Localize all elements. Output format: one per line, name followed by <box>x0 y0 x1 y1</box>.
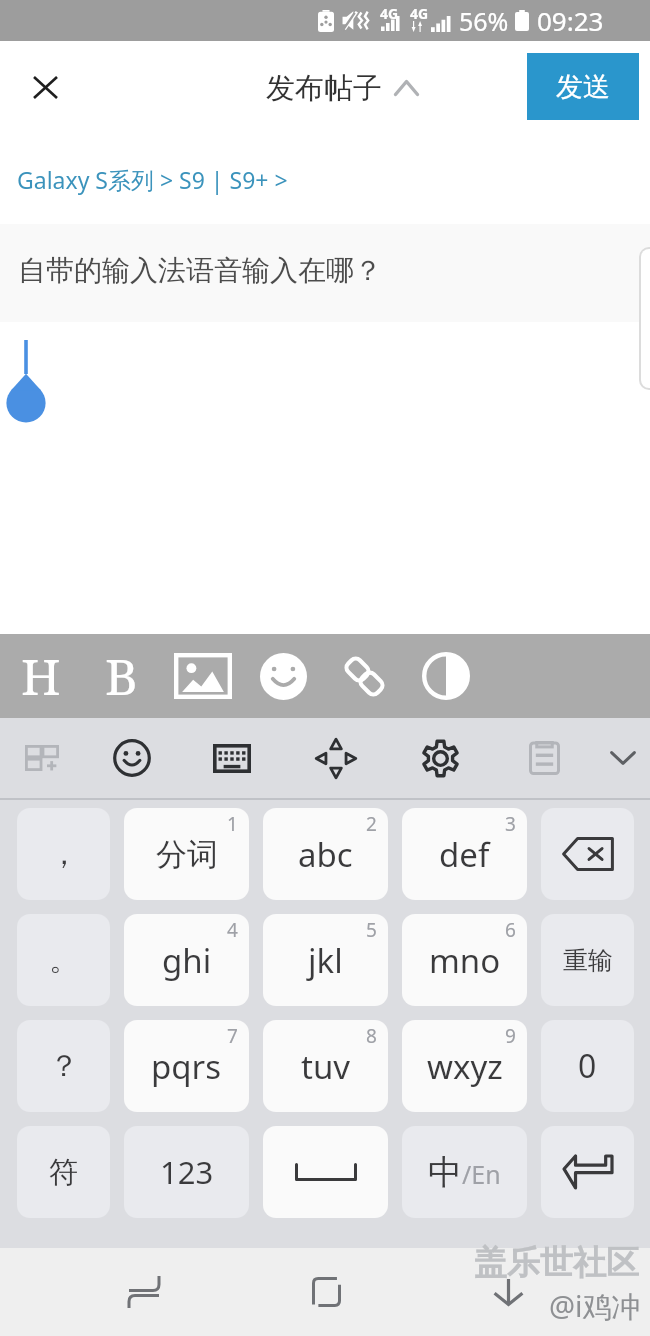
staticText: 2 <box>366 811 377 837</box>
staticText: 123 <box>160 1151 214 1193</box>
button[interactable] <box>263 1126 388 1218</box>
staticText: 09:23 <box>537 3 604 38</box>
staticText: H <box>21 642 61 710</box>
button[interactable]: abc <box>263 808 388 900</box>
button[interactable]: Clipboard <box>492 718 596 798</box>
button[interactable]: 发布帖子 <box>266 70 382 107</box>
button[interactable]: Back <box>472 1248 544 1336</box>
button[interactable]: 发送 <box>527 53 639 120</box>
staticText: 自带的输入法语音输入在哪？ <box>18 253 382 288</box>
button[interactable]: ？ <box>17 1020 110 1112</box>
button[interactable]: 重输 <box>541 914 634 1006</box>
button[interactable]: Apps <box>0 718 84 798</box>
button[interactable]: Settings <box>388 718 492 798</box>
button[interactable]: Heading <box>0 634 81 718</box>
button[interactable]: Emoji <box>243 634 324 718</box>
staticText: 9 <box>505 1023 516 1049</box>
staticText: 发布帖子 <box>266 70 382 107</box>
staticText: ghi <box>162 938 212 983</box>
staticText: 。 <box>49 941 79 979</box>
staticText: ？ <box>49 1047 79 1085</box>
button[interactable]: ， <box>17 808 110 900</box>
button[interactable]: Recent apps <box>108 1248 180 1336</box>
button[interactable]: pqrs <box>124 1020 249 1112</box>
button[interactable]: Hide keyboard <box>596 718 650 798</box>
staticText: 3 <box>505 811 516 837</box>
button[interactable] <box>541 808 634 900</box>
staticText: 8 <box>366 1023 377 1049</box>
button[interactable]: Close <box>16 58 74 116</box>
staticText: pqrs <box>151 1044 222 1089</box>
button[interactable]: wxyz <box>402 1020 527 1112</box>
staticText: 重输 <box>563 945 613 976</box>
button[interactable]: ghi <box>124 914 249 1006</box>
button[interactable]: 中 <box>402 1126 527 1218</box>
staticText: 4G <box>410 4 429 23</box>
staticText: wxyz <box>427 1044 503 1089</box>
staticText: B <box>105 642 138 710</box>
button[interactable]: 123 <box>124 1126 249 1218</box>
staticText: 1 <box>227 811 238 837</box>
staticText: def <box>439 832 490 877</box>
staticText: 4G <box>380 4 399 23</box>
staticText: tuv <box>301 1044 351 1089</box>
button[interactable]: 符 <box>17 1126 110 1218</box>
staticText: jkl <box>308 938 343 983</box>
staticText: 7 <box>227 1023 238 1049</box>
staticText: /En <box>462 1157 501 1191</box>
button[interactable] <box>0 322 650 634</box>
button[interactable]: Emoji <box>84 718 180 798</box>
staticText: @i鸡冲 <box>549 1286 641 1326</box>
staticText: 中 <box>428 1151 462 1194</box>
button[interactable]: tuv <box>263 1020 388 1112</box>
staticText: ， <box>49 835 79 873</box>
button[interactable]: Link <box>324 634 405 718</box>
button[interactable]: 0 <box>541 1020 634 1112</box>
button[interactable]: def <box>402 808 527 900</box>
staticText: 发送 <box>556 70 610 104</box>
staticText: 6 <box>505 917 516 943</box>
button[interactable]: Contrast <box>405 634 486 718</box>
button[interactable]: Keyboard <box>180 718 284 798</box>
staticText: abc <box>298 832 353 877</box>
staticText: 5 <box>366 917 377 943</box>
button[interactable]: Insert image <box>162 634 243 718</box>
button[interactable]: 自带的输入法语音输入在哪？ <box>0 224 650 322</box>
staticText: 0 <box>578 1044 597 1088</box>
button[interactable]: 分词 <box>124 808 249 900</box>
staticText: 盖乐世社区 <box>474 1242 639 1284</box>
button[interactable]: jkl <box>263 914 388 1006</box>
button[interactable]: mno <box>402 914 527 1006</box>
button[interactable]: Home <box>290 1248 362 1336</box>
staticText: 4 <box>227 917 238 943</box>
staticText: 符 <box>49 1154 78 1191</box>
button[interactable] <box>541 1126 634 1218</box>
staticText: 分词 <box>156 835 218 874</box>
button[interactable]: 。 <box>17 914 110 1006</box>
button[interactable]: Bold <box>81 634 162 718</box>
button[interactable]: Galaxy S系列 > S9 | S9+ > <box>17 164 288 195</box>
button[interactable]: Navigate <box>284 718 388 798</box>
staticText: 56% <box>459 4 509 38</box>
staticText: mno <box>429 938 501 983</box>
